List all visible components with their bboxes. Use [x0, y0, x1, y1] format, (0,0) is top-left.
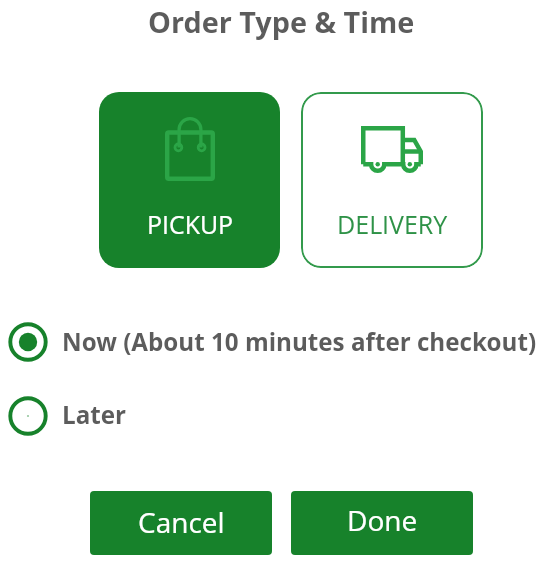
- staticText: Now (About 10 minutes after checkout): [62, 325, 537, 358]
- other: Option: [8, 396, 48, 436]
- staticText: PICKUP: [147, 207, 234, 241]
- other: Selected option: [8, 322, 48, 362]
- button[interactable]: Selected option: [8, 321, 535, 362]
- staticText: DELIVERY: [337, 207, 448, 241]
- button[interactable]: Cancel: [90, 491, 272, 555]
- button[interactable]: Option: [8, 395, 535, 436]
- button[interactable]: Done: [291, 491, 473, 555]
- staticText: Cancel: [138, 503, 225, 541]
- staticText: Order Type & Time: [148, 2, 415, 41]
- button[interactable]: Pickup: [99, 92, 280, 268]
- other: Pickup: [165, 117, 215, 181]
- staticText: Done: [347, 501, 418, 539]
- staticText: Later: [62, 398, 127, 431]
- button[interactable]: Delivery: [301, 92, 483, 268]
- other: Delivery: [361, 126, 423, 173]
